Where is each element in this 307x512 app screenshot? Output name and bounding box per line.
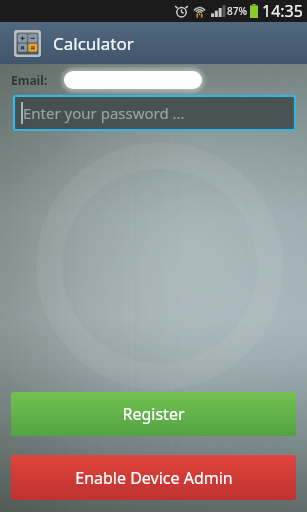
button[interactable]: Enter your password ... (14, 96, 295, 130)
staticText: Register (122, 403, 185, 425)
button[interactable]: Enable Device Admin (11, 455, 296, 500)
staticText: 14:35 (262, 0, 303, 22)
other: Wi-Fi (193, 5, 206, 18)
button[interactable]: Register (11, 392, 296, 436)
other: Alarm set (175, 5, 188, 18)
other: Signal strength (211, 5, 226, 17)
staticText: Enable Device Admin (75, 467, 233, 489)
staticText: Email: (11, 72, 48, 88)
staticText: Enter your password ... (23, 103, 185, 123)
staticText: 87% (227, 4, 247, 18)
other: Battery 87 percent (250, 4, 258, 18)
staticText: Calculator (53, 32, 134, 55)
